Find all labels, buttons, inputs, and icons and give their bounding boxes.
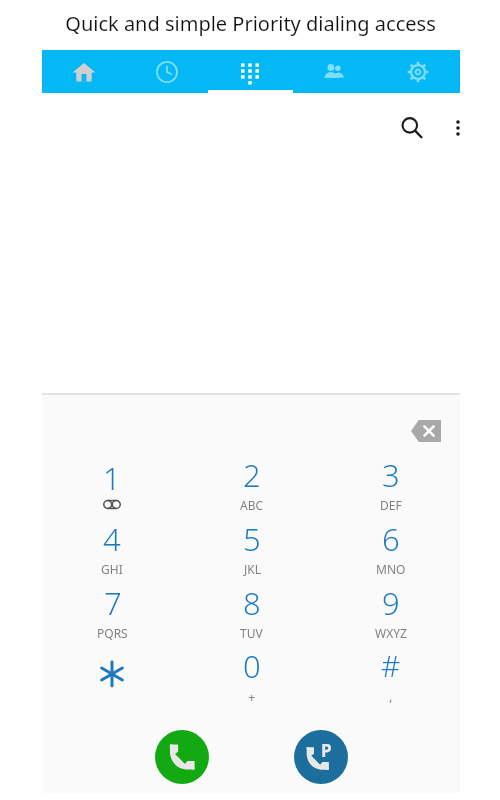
button[interactable]: 9 (321, 579, 460, 643)
staticText: MNO (376, 561, 406, 577)
staticText: , (389, 687, 393, 705)
button[interactable]: Backspace (402, 413, 450, 449)
staticText: 9 (382, 582, 400, 624)
button[interactable]: Call (155, 730, 209, 784)
staticText: 6 (382, 518, 400, 560)
staticText: WXYZ (375, 625, 407, 641)
button[interactable]: 3 (321, 451, 460, 515)
button[interactable]: Home (42, 50, 125, 93)
staticText: 3 (382, 454, 400, 496)
staticText: 2 (243, 454, 261, 496)
button[interactable]: # (321, 643, 460, 707)
staticText: 4 (103, 518, 121, 560)
button[interactable]: Settings (376, 50, 460, 93)
button[interactable]: 7 (42, 579, 182, 643)
staticText: 7 (104, 582, 122, 624)
button[interactable]: 8 (182, 579, 321, 643)
button[interactable]: 6 (321, 515, 460, 579)
button[interactable]: 2 (182, 451, 321, 515)
button[interactable]: 0 (182, 643, 321, 707)
button[interactable]: Dialpad (208, 50, 292, 93)
staticText: 0 (243, 645, 261, 687)
staticText: 5 (243, 518, 261, 560)
button[interactable]: * (42, 643, 182, 707)
button[interactable]: 1 (42, 451, 182, 515)
button[interactable]: 5 (182, 515, 321, 579)
button[interactable]: 4 (42, 515, 182, 579)
staticText: Quick and simple Priority dialing access (65, 10, 436, 37)
button[interactable]: Contacts (292, 50, 376, 93)
staticText: P (321, 739, 332, 762)
button[interactable]: Recents (125, 50, 208, 93)
button[interactable]: Search (392, 108, 432, 148)
staticText: DEF (380, 497, 402, 513)
button[interactable]: Priority call (294, 730, 348, 784)
staticText: + (248, 688, 256, 706)
staticText: # (381, 645, 401, 686)
staticText: PQRS (97, 625, 128, 641)
staticText: ABC (240, 497, 264, 513)
staticText: TUV (240, 625, 263, 641)
staticText: 8 (243, 582, 261, 624)
staticText: JKL (244, 561, 261, 577)
staticText: 1 (103, 457, 121, 499)
staticText: GHI (101, 561, 123, 577)
button[interactable]: More options (438, 108, 478, 148)
